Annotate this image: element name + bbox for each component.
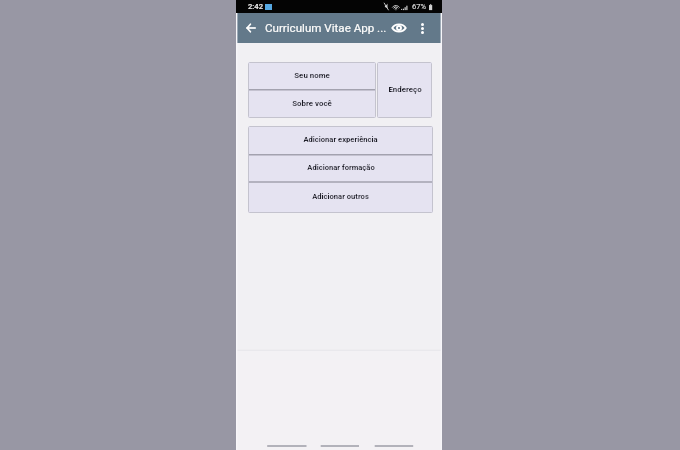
- staticText: Adicionar formação: [307, 163, 375, 172]
- staticText: Adicionar outros: [312, 192, 369, 201]
- staticText: Curriculum Vitae App ...: [265, 21, 387, 35]
- staticText: 2:42: [248, 2, 263, 11]
- button[interactable]: Preview: [389, 18, 409, 38]
- staticText: Sobre você: [292, 99, 332, 108]
- button[interactable]: Back: [241, 18, 261, 38]
- button[interactable]: Sobre você: [248, 90, 376, 118]
- button[interactable]: More options: [412, 18, 432, 38]
- button[interactable]: Adicionar outros: [248, 182, 433, 213]
- staticText: Seu nome: [294, 71, 330, 80]
- button[interactable]: Adicionar experiência: [248, 126, 433, 155]
- staticText: 67%: [412, 2, 427, 11]
- button[interactable]: Endereço: [377, 62, 432, 118]
- staticText: Endereço: [388, 85, 422, 94]
- button[interactable]: Seu nome: [248, 62, 376, 90]
- button[interactable]: Adicionar formação: [248, 155, 433, 182]
- staticText: Adicionar experiência: [303, 135, 378, 144]
